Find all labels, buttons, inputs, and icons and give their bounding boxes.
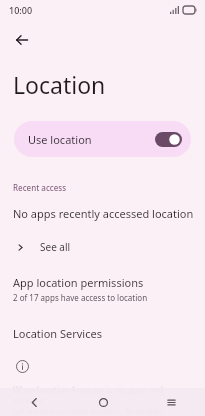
staticText: Use location: [28, 132, 155, 147]
button[interactable]: Use location: [14, 121, 191, 157]
staticText: No apps recently accessed location: [13, 206, 194, 221]
button[interactable]: About location: [10, 354, 34, 378]
staticText: Location: [13, 69, 106, 100]
staticText: App location permissions: [13, 275, 144, 290]
button[interactable]: See all: [0, 234, 205, 260]
button[interactable]: App location permissions: [0, 273, 205, 305]
button[interactable]: Location Services: [0, 322, 205, 344]
staticText: When Location Accuracy is on, apps and s…: [13, 384, 192, 406]
button[interactable]: Home: [69, 388, 137, 416]
staticText: Location Services: [13, 326, 102, 341]
staticText: 2 of 17 apps have access to location: [13, 292, 148, 303]
staticText: Recent access: [13, 182, 67, 193]
staticText: get a more accurate location. To do this…: [13, 406, 192, 416]
staticText: 10:00: [9, 4, 33, 16]
button[interactable]: Recent apps: [137, 388, 205, 416]
staticText: See all: [40, 240, 71, 254]
button[interactable]: Navigate up: [5, 23, 39, 57]
button[interactable]: Back: [0, 388, 69, 416]
